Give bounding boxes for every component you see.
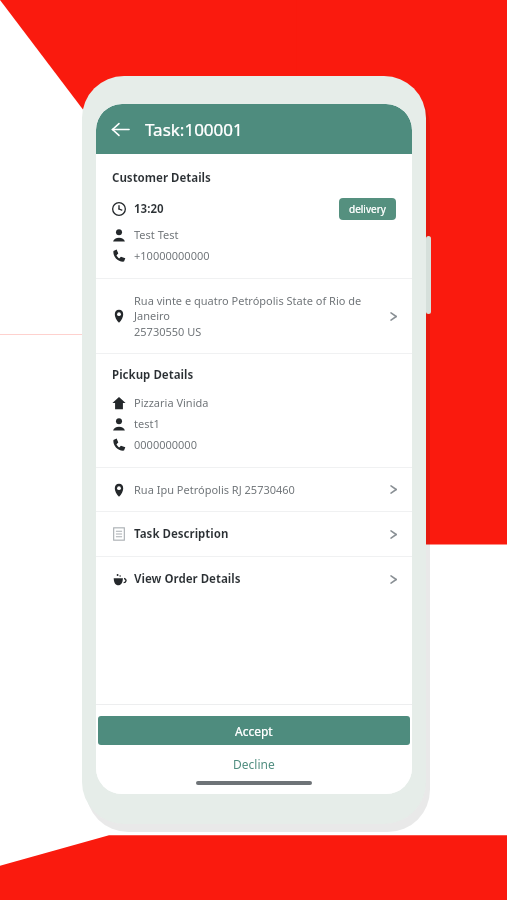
staticText: Pizzaria Vinida [134, 395, 209, 410]
staticText: test1 [134, 416, 160, 431]
button[interactable]: Rua vinte e quatro Petrópolis State of R… [96, 279, 412, 353]
button[interactable]: Pizzaria Vinida [104, 395, 396, 410]
staticText: Task:100001 [145, 118, 243, 141]
button[interactable]: 0000000000 [104, 437, 396, 452]
button[interactable]: test1 [104, 416, 396, 431]
staticText: Pickup Details [112, 367, 194, 383]
button[interactable]: View Order Details [96, 557, 412, 601]
button[interactable]: Back [100, 109, 140, 149]
staticText: 0000000000 [134, 437, 197, 452]
button[interactable]: Rua Ipu Petrópolis RJ 25730460 [96, 468, 412, 511]
staticText: 13:20 [134, 201, 164, 217]
staticText: Customer Details [112, 170, 211, 186]
button[interactable]: Task Description [96, 512, 412, 556]
button[interactable]: Accept [98, 716, 410, 745]
staticText: Rua Ipu Petrópolis RJ 25730460 [134, 482, 295, 497]
button[interactable]: +10000000000 [104, 248, 396, 263]
staticText: Decline [233, 756, 275, 772]
staticText: 25730550 US [134, 324, 202, 339]
staticText: View Order Details [134, 571, 241, 587]
staticText: +10000000000 [134, 248, 210, 263]
button[interactable]: Decline [98, 745, 410, 782]
staticText: delivery [349, 202, 386, 216]
button[interactable]: Test Test [104, 227, 396, 242]
staticText: Test Test [134, 227, 179, 242]
staticText: Accept [235, 723, 273, 739]
button[interactable]: delivery [339, 198, 396, 220]
staticText: Task Description [134, 526, 229, 542]
staticText: Rua vinte e quatro Petrópolis State of R… [134, 293, 389, 323]
